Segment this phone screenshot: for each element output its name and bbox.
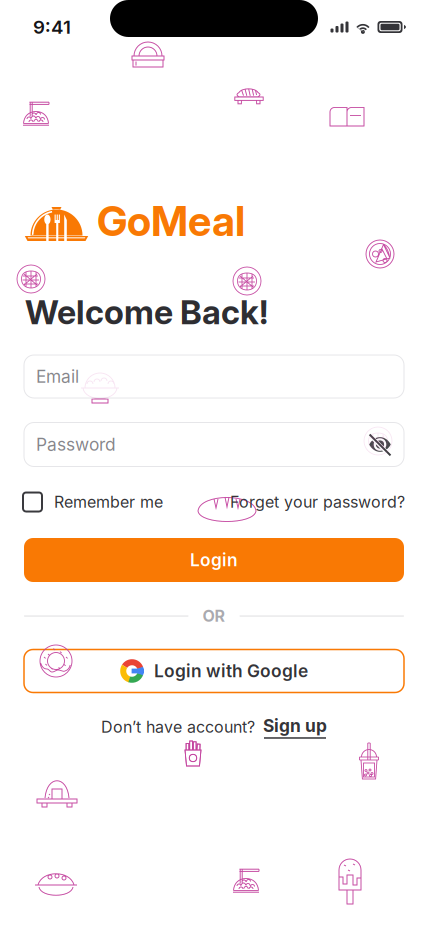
button[interactable]: Forget your password?: [230, 492, 405, 512]
staticText: GoMeal: [97, 196, 245, 246]
button[interactable]: Login: [24, 538, 404, 582]
staticText: Welcome Back!: [25, 292, 268, 332]
staticText: Remember me: [54, 492, 163, 512]
button[interactable]: Sign up: [263, 715, 327, 739]
button[interactable]: Show password: [364, 428, 396, 460]
staticText: Forget your password?: [230, 492, 405, 512]
staticText: Sign up: [263, 715, 327, 736]
staticText: Don’t have account?: [101, 717, 255, 737]
staticText: Email: [36, 366, 79, 387]
button[interactable]: Remember me: [23, 492, 163, 512]
staticText: Login: [190, 549, 238, 570]
staticText: Login with Google: [154, 660, 308, 681]
staticText: Password: [36, 434, 116, 455]
staticText: 9:41: [33, 16, 71, 38]
staticText: OR: [202, 606, 225, 626]
button[interactable]: Login with Google: [24, 649, 404, 692]
